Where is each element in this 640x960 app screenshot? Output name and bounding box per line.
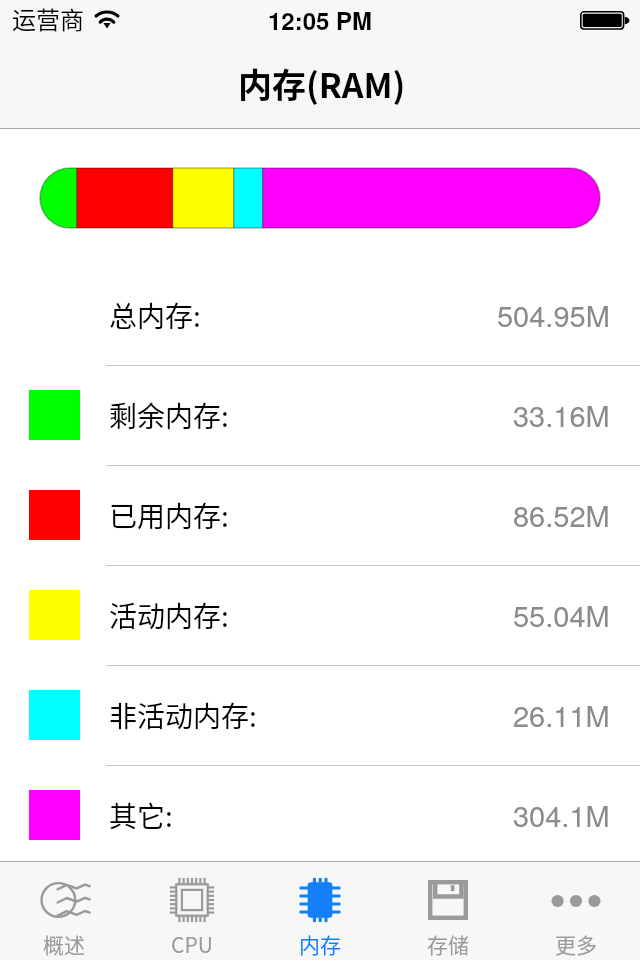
staticText: 概述 <box>43 929 85 959</box>
button[interactable]: 内存 Memory <box>256 861 384 960</box>
staticText: 非活动内存: <box>109 695 257 736</box>
staticText: 更多 <box>555 929 597 959</box>
staticText: 86.52M <box>513 494 610 536</box>
staticText: 其它: <box>109 795 173 836</box>
staticText: 内存(RAM) <box>238 59 406 108</box>
button[interactable]: 存储 Storage <box>384 861 512 960</box>
button[interactable]: 非活动内存: <box>0 665 640 765</box>
staticText: 304.1M <box>513 794 610 836</box>
button[interactable]: 总内存: <box>0 265 640 365</box>
staticText: 总内存: <box>109 295 201 336</box>
staticText: 存储 <box>427 929 469 959</box>
button[interactable]: 概述 Overview <box>0 861 128 960</box>
staticText: 活动内存: <box>109 595 229 636</box>
staticText: 已用内存: <box>109 495 229 536</box>
staticText: 剩余内存: <box>109 395 229 436</box>
button[interactable]: CPU <box>128 861 256 960</box>
staticText: 504.95M <box>497 294 610 336</box>
button[interactable]: 已用内存: <box>0 465 640 565</box>
button[interactable]: 剩余内存: <box>0 365 640 465</box>
staticText: 33.16M <box>513 394 610 436</box>
staticText: 内存 <box>299 929 341 959</box>
button[interactable]: 其它: <box>0 765 640 865</box>
button[interactable]: 更多 More <box>512 861 640 960</box>
staticText: 55.04M <box>513 594 610 636</box>
staticText: 26.11M <box>513 694 610 736</box>
button[interactable]: 活动内存: <box>0 565 640 665</box>
staticText: CPU <box>171 929 213 959</box>
staticText: 12:05 PM <box>268 3 373 37</box>
staticText: 运营商 <box>12 1 84 36</box>
